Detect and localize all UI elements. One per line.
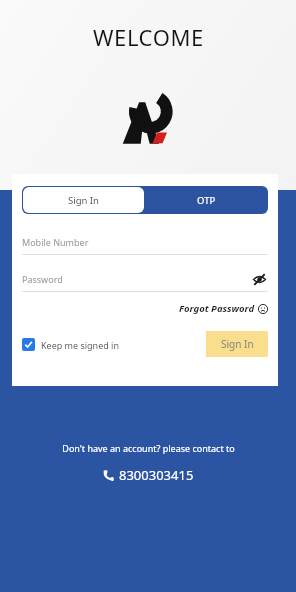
button[interactable]: Password bbox=[22, 267, 268, 291]
staticText: OTP bbox=[197, 194, 216, 207]
staticText: Keep me signed in bbox=[41, 339, 119, 351]
button[interactable]: Sign In bbox=[23, 187, 144, 213]
staticText: Sign In bbox=[68, 194, 99, 207]
staticText: 8300303415 bbox=[119, 466, 194, 484]
button[interactable]: Keep me signed in bbox=[22, 338, 119, 351]
button[interactable]: 8300303415 bbox=[0, 466, 296, 484]
button[interactable]: Sign In bbox=[206, 331, 268, 357]
staticText: Don't have an account? please contact to bbox=[62, 442, 235, 454]
button[interactable]: OTP bbox=[145, 186, 268, 214]
staticText: Mobile Number bbox=[22, 236, 89, 248]
button[interactable]: Mobile Number bbox=[22, 230, 268, 254]
staticText: Forgot Password bbox=[179, 302, 255, 315]
staticText: WELCOME bbox=[93, 22, 204, 52]
staticText: Sign In bbox=[221, 337, 254, 351]
staticText: Password bbox=[22, 273, 63, 285]
button[interactable]: Forgot Password bbox=[179, 302, 268, 315]
button[interactable]: Show password bbox=[250, 270, 268, 288]
